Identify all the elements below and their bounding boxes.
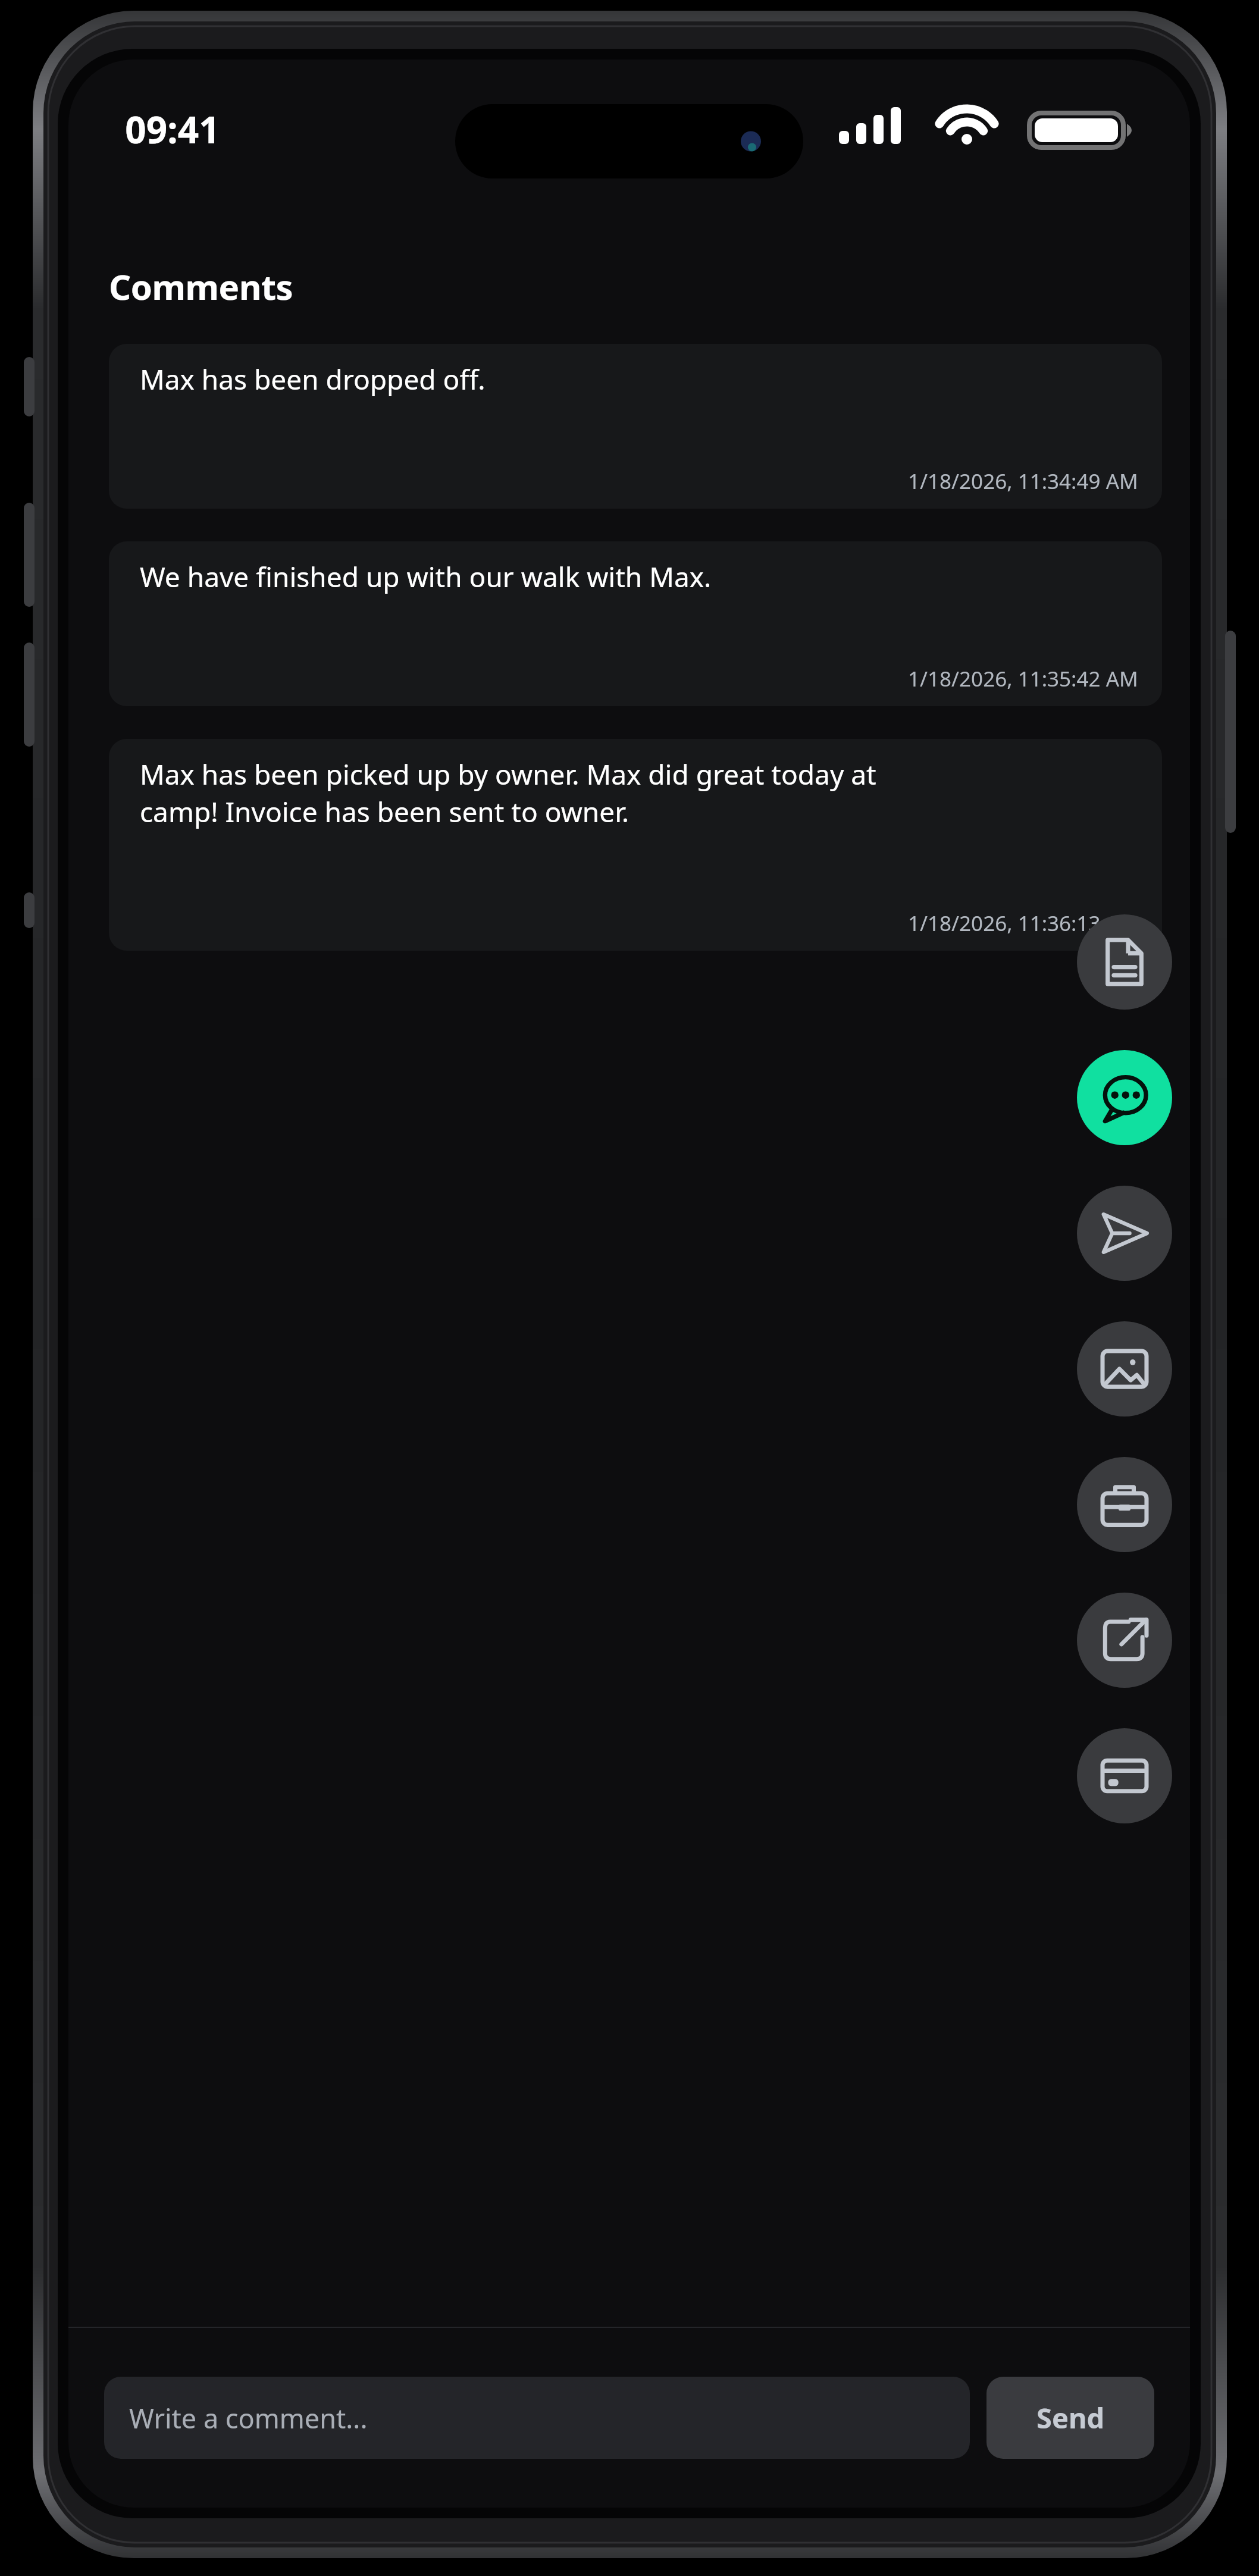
staticText: 09:41	[77, 104, 268, 154]
button[interactable]: Open externally	[1077, 1593, 1172, 1688]
other: Signal, Wi-Fi and battery status	[833, 101, 1166, 155]
staticText: Max has been picked up by owner. Max did…	[140, 756, 876, 793]
button[interactable]: Payment	[1077, 1728, 1172, 1823]
staticText: Comments	[109, 263, 293, 310]
button[interactable]: Max has been picked up by owner. Max did…	[109, 739, 1162, 951]
button[interactable]: Write a comment...	[104, 2377, 970, 2459]
button[interactable]: Comments	[1077, 1050, 1172, 1145]
staticText: camp! Invoice has been sent to owner.	[140, 793, 629, 831]
button[interactable]: Send	[986, 2377, 1154, 2459]
staticText: 1/18/2026, 11:36:13 AM	[908, 909, 1138, 938]
staticText: Send	[1036, 2399, 1105, 2437]
staticText: We have finished up with our walk with M…	[140, 558, 712, 596]
button[interactable]: Send report	[1077, 1186, 1172, 1281]
button[interactable]: Photos	[1077, 1321, 1172, 1417]
button[interactable]: We have finished up with our walk with M…	[109, 541, 1162, 706]
button[interactable]: Services	[1077, 1457, 1172, 1552]
button[interactable]: Max has been dropped off.	[109, 344, 1162, 509]
staticText: 1/18/2026, 11:35:42 AM	[908, 665, 1138, 693]
staticText: Write a comment...	[129, 2400, 368, 2436]
button[interactable]: Documents	[1077, 914, 1172, 1010]
staticText: Max has been dropped off.	[140, 361, 486, 398]
staticText: 1/18/2026, 11:34:49 AM	[908, 467, 1138, 496]
